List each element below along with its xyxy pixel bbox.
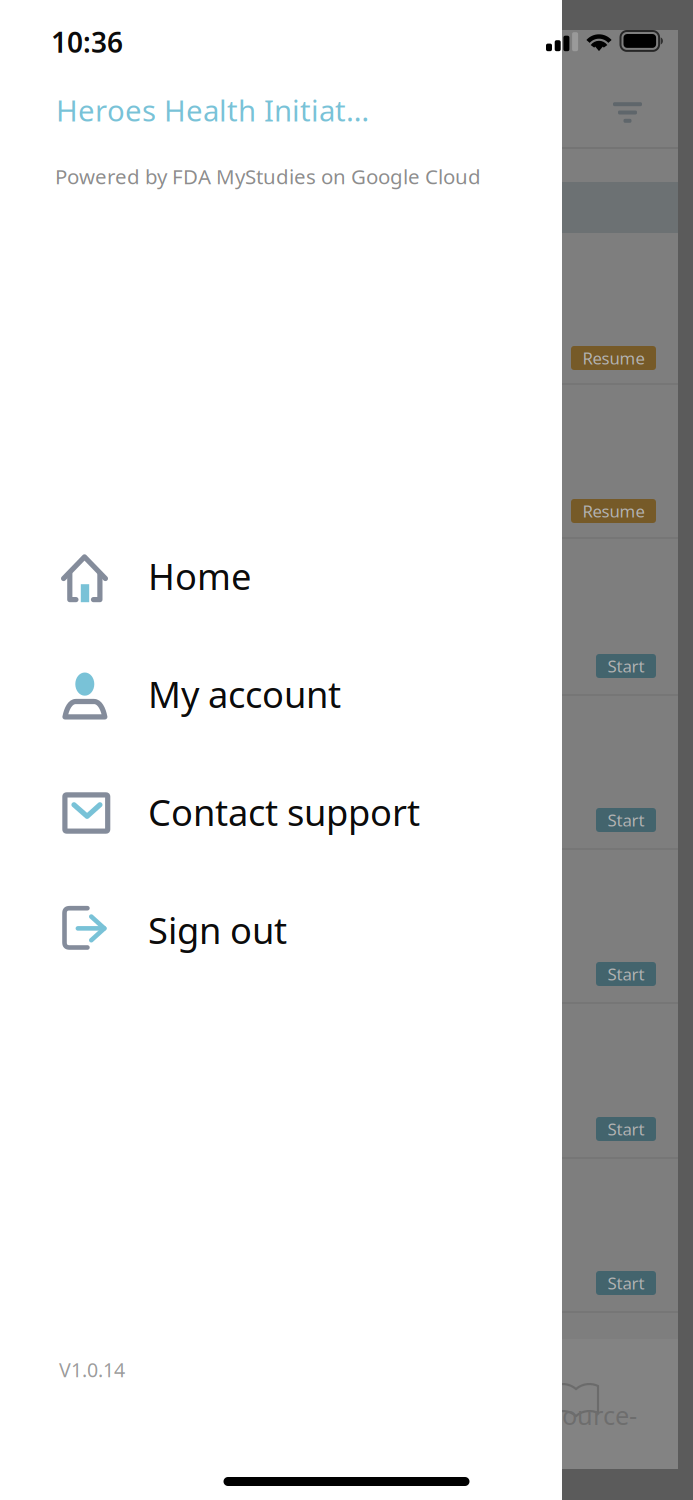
button[interactable]: Home bbox=[0, 515, 562, 633]
staticText: Sign out bbox=[148, 905, 287, 955]
staticText: 10:36 bbox=[51, 23, 123, 61]
staticText: Start bbox=[607, 655, 644, 677]
button[interactable]: My account bbox=[0, 633, 562, 751]
staticText: Start bbox=[607, 809, 644, 831]
staticText: Start bbox=[607, 1118, 644, 1140]
staticText: Powered by FDA MyStudies on Google Cloud bbox=[55, 162, 481, 190]
staticText: Start bbox=[607, 1272, 644, 1294]
staticText: Resources bbox=[520, 1398, 637, 1466]
staticText: Resume bbox=[582, 500, 644, 522]
button[interactable]: Sign out bbox=[0, 869, 562, 987]
staticText: Resume bbox=[582, 347, 644, 369]
staticText: V1.0.14 bbox=[59, 1356, 125, 1383]
staticText: Contact support bbox=[148, 787, 420, 837]
staticText: Heroes Health Initiat… bbox=[56, 90, 369, 130]
button[interactable]: Contact support bbox=[0, 751, 562, 869]
staticText: Home bbox=[148, 551, 251, 601]
staticText: My account bbox=[148, 669, 341, 719]
staticText: Start bbox=[607, 963, 644, 985]
